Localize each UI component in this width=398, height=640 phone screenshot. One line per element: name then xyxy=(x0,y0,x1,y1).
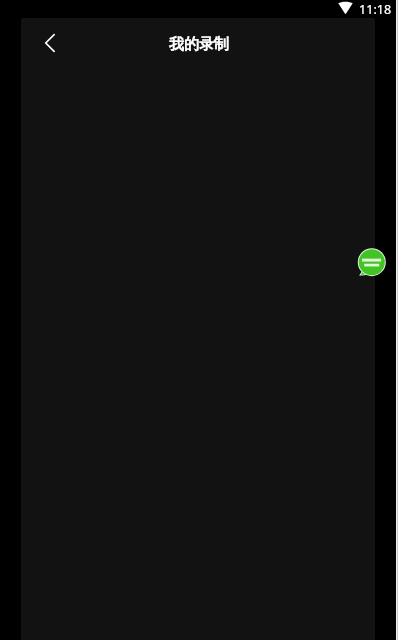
staticText: 我的录制 xyxy=(169,35,229,54)
button[interactable]: Back xyxy=(33,26,67,60)
staticText: 11:18 xyxy=(359,1,392,18)
other: Wi-Fi xyxy=(338,1,353,14)
button[interactable]: Customer service chat xyxy=(356,247,388,279)
